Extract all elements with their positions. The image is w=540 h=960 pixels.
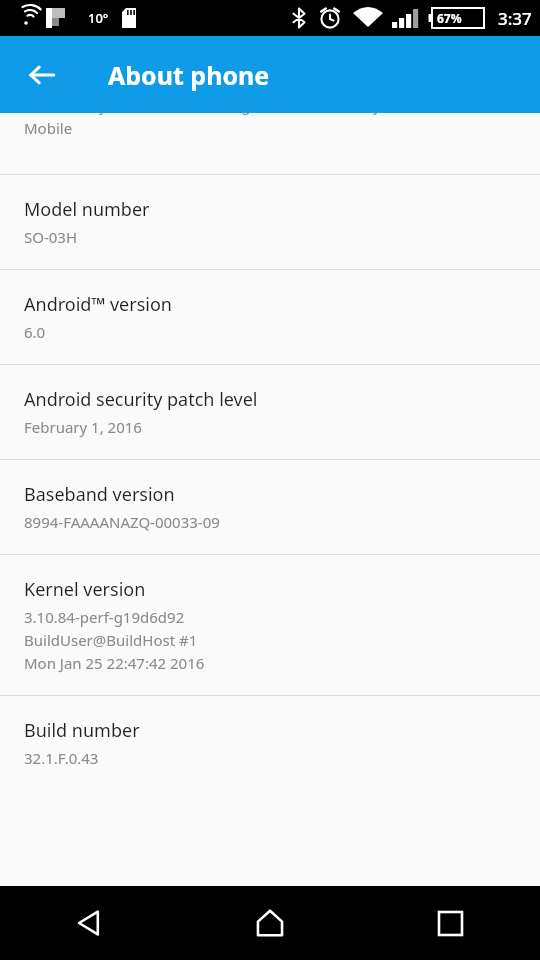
button[interactable]: Home: [180, 886, 360, 960]
button[interactable]: Recent apps: [360, 886, 540, 960]
staticText: 3:37: [498, 7, 532, 30]
staticText: 8994-FAAAANAZQ-00033-09: [24, 512, 220, 532]
staticText: 67%: [437, 10, 462, 26]
staticText: February 1, 2016: [24, 417, 142, 437]
staticText: 32.1.F.0.43: [24, 748, 99, 768]
staticText: Kernel version: [24, 577, 146, 602]
staticText: About phone: [108, 58, 270, 92]
staticText: Android security patch level: [24, 387, 258, 412]
button[interactable]: Build number: [0, 696, 540, 790]
button[interactable]: Navigate up: [12, 45, 72, 105]
staticText: Build number: [24, 718, 140, 743]
staticText: Mobile: [24, 118, 73, 138]
button[interactable]: Kernel version: [0, 555, 540, 695]
staticText: Model number: [24, 197, 150, 222]
staticText: 10°: [88, 9, 109, 27]
staticText: Baseband version: [24, 482, 175, 507]
staticText: Send anonymous data and usage statistics…: [24, 113, 381, 115]
staticText: Mon Jan 25 22:47:42 2016: [24, 653, 205, 673]
staticText: 3.10.84-perf-g19d6d92: [24, 607, 185, 627]
staticText: BuildUser@BuildHost #1: [24, 630, 198, 650]
button[interactable]: Back: [0, 886, 180, 960]
button[interactable]: Send anonymous data and usage statistics…: [0, 113, 540, 174]
staticText: 6.0: [24, 322, 46, 342]
staticText: Android™ version: [24, 292, 172, 317]
button[interactable]: Android™ version: [0, 270, 540, 364]
button[interactable]: Model number: [0, 175, 540, 269]
staticText: SO-03H: [24, 227, 78, 247]
button[interactable]: Android security patch level: [0, 365, 540, 459]
button[interactable]: Baseband version: [0, 460, 540, 554]
